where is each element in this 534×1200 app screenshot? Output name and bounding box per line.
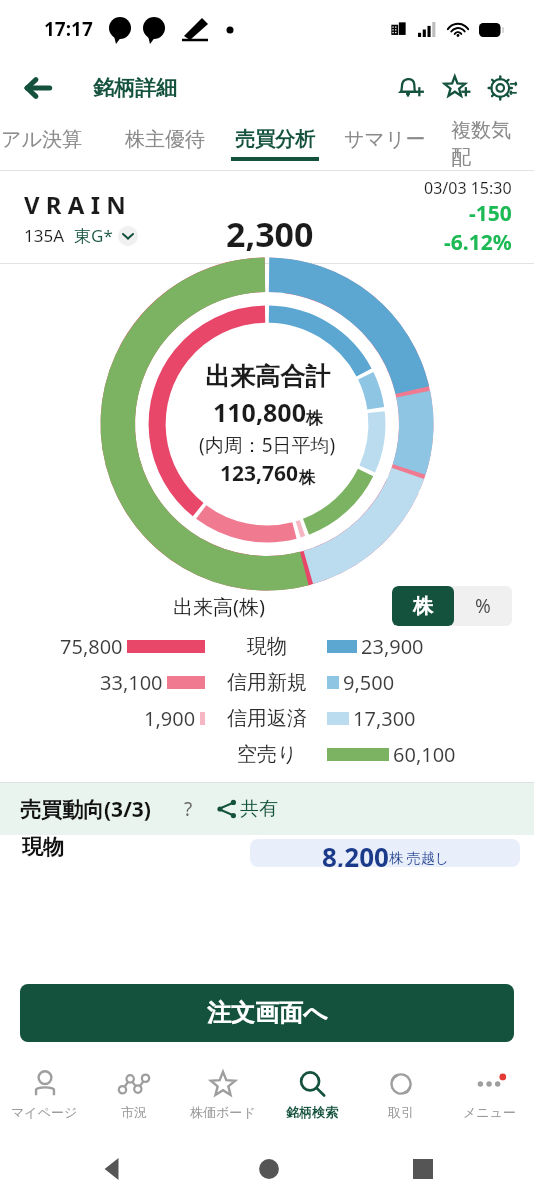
staticText: -6.12% (444, 228, 512, 257)
staticText: ? (184, 796, 193, 822)
staticText: 出来高(株) (173, 593, 265, 620)
staticText: 110,800 (213, 395, 306, 429)
staticText: 取引 (388, 1104, 414, 1120)
button[interactable]: 取引 (356, 1050, 445, 1138)
staticText: 現物 (247, 634, 287, 659)
staticText: 03/03 15:30 (424, 177, 512, 199)
staticText: 東G* (74, 224, 113, 247)
button[interactable]: サマリー (341, 127, 429, 161)
button[interactable]: Settings (480, 65, 526, 111)
button[interactable]: Add alert (388, 65, 434, 111)
staticText: 出来高合計 (205, 361, 330, 392)
staticText: マイページ (11, 1104, 78, 1120)
staticText: メニュー (463, 1104, 516, 1120)
staticText: 株 (413, 594, 433, 619)
staticText: 8,200 (322, 839, 389, 867)
button[interactable]: 銘柄検索 (267, 1050, 356, 1138)
staticText: 2,300 (226, 211, 314, 257)
staticText: 株 売越し (389, 848, 449, 867)
button[interactable]: メニュー (445, 1050, 534, 1138)
button[interactable]: アル決算 (0, 127, 85, 161)
button[interactable]: 75,800 (0, 628, 534, 664)
button[interactable]: 1,900 (0, 700, 534, 736)
staticText: 123,760 (220, 459, 299, 488)
button[interactable]: 複数気配 (451, 118, 523, 170)
staticText: 33,100 (100, 669, 163, 696)
staticText: 信用新規 (227, 670, 307, 695)
staticText: 共有 (240, 797, 278, 821)
staticText: 空売り (237, 742, 298, 767)
staticText: 売買動向(3/3) (20, 795, 151, 824)
staticText: 17:17 (44, 16, 93, 42)
button[interactable]: マイページ (0, 1050, 89, 1138)
button[interactable]: 空売り (0, 736, 534, 772)
button[interactable]: % (454, 586, 512, 626)
staticText: サマリー (344, 127, 426, 152)
staticText: 60,100 (393, 741, 456, 768)
staticText: 株 (299, 468, 315, 488)
button[interactable]: 市況 (89, 1050, 178, 1138)
staticText: 注文画面へ (207, 998, 328, 1028)
staticText: 売買分析 (235, 127, 315, 152)
staticText: 株 (306, 408, 323, 429)
staticText: アル決算 (1, 127, 82, 152)
staticText: 17,300 (353, 705, 416, 732)
button[interactable]: 株価ボード (178, 1050, 267, 1138)
button[interactable]: 33,100 (0, 664, 534, 700)
staticText: 135A (24, 224, 65, 247)
staticText: 23,900 (361, 633, 424, 660)
button[interactable]: 株主優待 (121, 127, 209, 161)
button[interactable]: 売買分析 (231, 127, 319, 161)
staticText: 9,500 (343, 669, 395, 696)
button[interactable]: 株 (392, 586, 454, 626)
staticText: 市況 (121, 1104, 147, 1120)
staticText: 信用返済 (227, 706, 307, 731)
button[interactable]: Back (14, 64, 62, 112)
button[interactable]: Add to watchlist (434, 65, 480, 111)
staticText: (内周：5日平均) (199, 432, 336, 458)
button[interactable]: 注文画面へ (20, 984, 514, 1042)
staticText: 1,900 (144, 705, 196, 732)
staticText: V R A I N (24, 188, 126, 221)
staticText: 株価ボード (190, 1104, 256, 1120)
staticText: 株主優待 (125, 127, 205, 152)
button[interactable]: Help (173, 794, 203, 824)
button[interactable]: 共有 (217, 797, 278, 821)
staticText: 現物 (22, 834, 64, 860)
staticText: 銘柄詳細 (93, 75, 177, 101)
staticText: % (475, 593, 491, 619)
staticText: -150 (469, 199, 512, 228)
button[interactable]: Expand market (118, 226, 138, 246)
staticText: 複数気配 (451, 118, 523, 170)
staticText: 75,800 (60, 633, 123, 660)
staticText: 銘柄検索 (286, 1104, 338, 1120)
